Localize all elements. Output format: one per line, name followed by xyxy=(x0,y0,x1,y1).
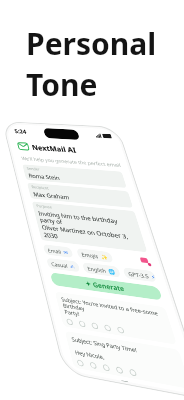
button[interactable]: Emojis xyxy=(45,139,79,150)
staticText: We'll help you generate the perfect emai… xyxy=(12,40,116,47)
staticText: Inviting him to the birthday party of Ol… xyxy=(15,101,111,133)
staticText: Max Graham xyxy=(15,80,53,88)
staticText: 🌐 xyxy=(71,156,78,162)
staticText: Personal xyxy=(26,23,157,64)
button[interactable]: Generate xyxy=(11,168,115,181)
button[interactable]: Casual xyxy=(11,153,43,164)
staticText: English xyxy=(51,155,69,162)
staticText: ✨ xyxy=(68,142,75,148)
button[interactable]: GPT-3.5 xyxy=(86,153,115,164)
staticText: NextMail AI xyxy=(27,24,75,35)
staticText: Sender xyxy=(15,53,29,59)
staticText: Generate xyxy=(52,170,82,179)
button[interactable]: Subject: Sing Party Time! Hey Nicole, xyxy=(11,225,115,259)
staticText: Email xyxy=(15,141,29,148)
staticText: Subject: You're invited to a free-some B… xyxy=(16,190,110,210)
button[interactable]: Purpose xyxy=(11,93,115,135)
staticText: Emojis xyxy=(49,141,66,148)
button[interactable]: Subject: You're invited to a free-some B… xyxy=(11,187,115,221)
button[interactable]: English xyxy=(47,153,82,164)
staticText: Tone xyxy=(26,64,98,105)
button[interactable]: Email xyxy=(11,139,40,150)
staticText: Casual xyxy=(15,155,32,162)
staticText: Recipient xyxy=(15,74,34,80)
button[interactable]: Sender xyxy=(11,51,115,69)
staticText: Subject: Sing Party Time! Hey Nicole, xyxy=(16,228,76,248)
staticText: ✍ xyxy=(34,156,39,162)
button[interactable]: Recipient xyxy=(11,72,115,90)
staticText: ✉ xyxy=(31,142,36,148)
